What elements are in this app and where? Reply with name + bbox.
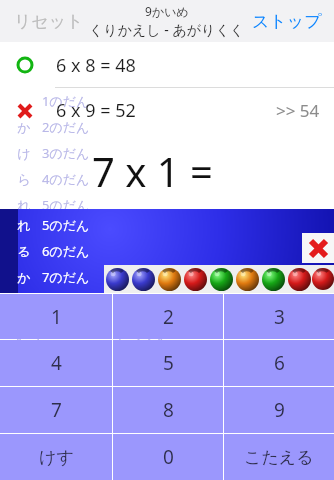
staticText: 5のだん (42, 216, 90, 234)
staticText: 7 (51, 397, 62, 423)
staticText: 6 x 9 = 52 (56, 98, 136, 123)
staticText: 9かいめ (145, 3, 189, 19)
staticText: 2のだん (42, 118, 90, 136)
staticText: る (6, 243, 42, 259)
button[interactable]: る (0, 238, 90, 264)
staticText: けす (39, 447, 74, 468)
staticText: す (6, 275, 42, 291)
button[interactable]: リセット (0, 3, 98, 40)
staticText: リセット (14, 11, 84, 32)
staticText (6, 92, 42, 110)
staticText: 1のだん (42, 92, 90, 110)
staticText: 7 x 1 = (92, 144, 213, 198)
button[interactable]: こたえる (224, 434, 334, 480)
staticText: 4のだん (42, 170, 90, 188)
button[interactable]: れ (0, 212, 90, 238)
button[interactable]: Close (302, 233, 334, 263)
button[interactable]: ストップ (240, 3, 334, 40)
staticText: 2 (163, 304, 174, 330)
staticText: 5のだん (42, 196, 90, 214)
staticText: 7のだん (42, 268, 90, 286)
button[interactable]: 7 (0, 387, 112, 433)
staticText: こたえる (244, 447, 314, 468)
staticText: 9 (274, 397, 285, 423)
button[interactable]: 8 (113, 387, 223, 433)
staticText: 9のだん (42, 300, 90, 318)
button[interactable]: 5 (113, 340, 223, 386)
staticText: れ (6, 217, 42, 233)
staticText: 6 (274, 350, 285, 376)
staticText: 3 (274, 304, 285, 330)
staticText: 8 (163, 397, 174, 423)
button[interactable]: 4 (0, 340, 112, 386)
staticText: 6 x 8 = 48 (56, 53, 136, 78)
staticText: 6のだん (42, 242, 90, 260)
staticText: 8のだん (42, 274, 90, 292)
staticText: せってい (116, 327, 170, 343)
staticText: 3のだん (42, 144, 90, 162)
button[interactable]: 6 (224, 340, 334, 386)
staticText: 7のだん (42, 248, 90, 266)
staticText: 0 (163, 444, 174, 470)
staticText: か (6, 119, 42, 135)
staticText: る (6, 223, 42, 239)
staticText: 4 (51, 350, 62, 376)
staticText: いろ (6, 327, 50, 343)
staticText: か (6, 249, 42, 265)
button[interactable]: か (0, 264, 90, 290)
staticText: か (6, 269, 42, 285)
staticText: くりかえし - あがりくく (89, 20, 245, 39)
staticText: >> 54 (276, 99, 320, 122)
staticText: 6のだん (42, 222, 90, 240)
staticText: 1 (51, 304, 62, 330)
staticText: ら (6, 171, 42, 187)
button[interactable]: 9 (224, 387, 334, 433)
button[interactable]: 2 (113, 294, 223, 339)
button[interactable]: 3 (224, 294, 334, 339)
button[interactable]: 0 (113, 434, 223, 480)
staticText: 5 (163, 350, 174, 376)
staticText: ストップ (252, 11, 322, 32)
button[interactable]: けす (0, 434, 112, 480)
button[interactable]: 1 (0, 294, 112, 339)
staticText: け (6, 145, 42, 161)
staticText: れ (6, 197, 42, 213)
